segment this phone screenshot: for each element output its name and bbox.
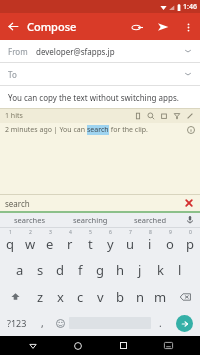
button[interactable]: Recent apps (110, 336, 136, 355)
staticText: n (136, 288, 145, 306)
staticText: 4 (69, 229, 72, 236)
staticText: h (116, 261, 125, 279)
button[interactable]: Delete (157, 109, 170, 123)
staticText: 9 (169, 229, 172, 236)
staticText: e (46, 235, 54, 253)
button[interactable]: n (130, 283, 150, 310)
button[interactable]: To (0, 63, 200, 85)
button[interactable]: f (70, 256, 90, 283)
staticText: m (154, 288, 167, 306)
button[interactable]: Voice input (180, 213, 200, 227)
staticText: 8 (149, 229, 152, 236)
staticText: 5 (89, 229, 92, 236)
button[interactable]: j (130, 256, 150, 283)
button[interactable]: v (90, 283, 110, 310)
staticText: 1 hits (5, 111, 23, 121)
staticText: 6 (109, 229, 112, 236)
staticText: 1:46 (183, 2, 197, 12)
staticText: 2 minutes ago | You can (5, 125, 87, 135)
button[interactable]: searches (0, 213, 60, 227)
staticText: s (37, 261, 44, 279)
button[interactable]: 4 (60, 228, 80, 256)
staticText: c (77, 288, 84, 306)
staticText: for the clip. (109, 125, 148, 135)
button[interactable]: 2 (20, 228, 40, 256)
button[interactable]: 7 (120, 228, 140, 256)
button[interactable]: x (50, 283, 70, 310)
staticText: search (5, 198, 30, 209)
staticText: a (16, 261, 24, 279)
staticText: ?123 (7, 317, 27, 329)
staticText: d (56, 261, 64, 279)
button[interactable]: More options (176, 15, 200, 39)
staticText: searched (134, 215, 167, 225)
staticText: o (166, 235, 174, 253)
button[interactable]: k (150, 256, 170, 283)
button[interactable]: c (70, 283, 90, 310)
staticText: From (8, 46, 28, 57)
button[interactable]: 5 (80, 228, 100, 256)
button[interactable]: a (10, 256, 30, 283)
button[interactable]: 6 (100, 228, 120, 256)
button[interactable]: g (90, 256, 110, 283)
staticText: x (57, 288, 64, 306)
button[interactable]: Switch keyboard (155, 336, 181, 355)
button[interactable]: 2 minutes ago | You can (0, 123, 200, 137)
staticText: To (8, 69, 17, 80)
button[interactable]: z (30, 283, 50, 310)
button[interactable]: Filter (170, 109, 183, 123)
button[interactable]: Copy (131, 109, 144, 123)
button[interactable]: l (170, 256, 190, 283)
staticText: searching (73, 215, 108, 225)
staticText: 2 (29, 229, 32, 236)
button[interactable]: searching (60, 213, 120, 227)
button[interactable]: Delete (170, 283, 200, 310)
button[interactable]: Back (0, 13, 27, 40)
button[interactable]: 0 (180, 228, 200, 256)
staticText: Compose (27, 19, 77, 34)
staticText: f (78, 261, 83, 279)
button[interactable]: Home (65, 336, 91, 355)
button[interactable]: 8 (140, 228, 160, 256)
other: Info (187, 126, 195, 134)
button[interactable]: Emoji (51, 310, 69, 336)
staticText: search (87, 125, 109, 135)
staticText: p (186, 235, 194, 253)
button[interactable]: Attach file (124, 14, 150, 40)
staticText: developer@sfapps.jp (36, 46, 115, 57)
staticText: g (96, 261, 104, 279)
staticText: j (138, 261, 142, 279)
button[interactable]: s (30, 256, 50, 283)
staticText: k (157, 261, 164, 279)
button[interactable]: Clear search (181, 195, 197, 211)
button[interactable]: From (0, 40, 200, 62)
button[interactable]: searched (120, 213, 180, 227)
button[interactable]: b (110, 283, 130, 310)
staticText: u (126, 235, 135, 253)
button[interactable]: Search (144, 109, 157, 123)
button[interactable]: Shift (0, 283, 30, 310)
button[interactable]: , (33, 310, 51, 336)
button[interactable]: 3 (40, 228, 60, 256)
staticText: . (159, 316, 162, 330)
button[interactable]: Edit (183, 109, 196, 123)
staticText: r (67, 235, 73, 253)
staticText: 1 (9, 229, 12, 236)
button[interactable]: . (151, 310, 169, 336)
staticText: searches (14, 215, 46, 225)
button[interactable]: Enter (176, 315, 193, 332)
button[interactable]: Back (20, 336, 46, 355)
staticText: 7 (129, 229, 132, 236)
button[interactable]: Send (150, 14, 176, 40)
staticText: v (97, 288, 104, 306)
button[interactable]: d (50, 256, 70, 283)
button[interactable]: 9 (160, 228, 180, 256)
staticText: t (88, 235, 93, 253)
button[interactable]: 1 (0, 228, 20, 256)
button[interactable]: m (150, 283, 170, 310)
button[interactable]: ?123 (0, 310, 33, 336)
button[interactable]: h (110, 256, 130, 283)
staticText: 3 (49, 229, 52, 236)
staticText: , (41, 316, 44, 330)
